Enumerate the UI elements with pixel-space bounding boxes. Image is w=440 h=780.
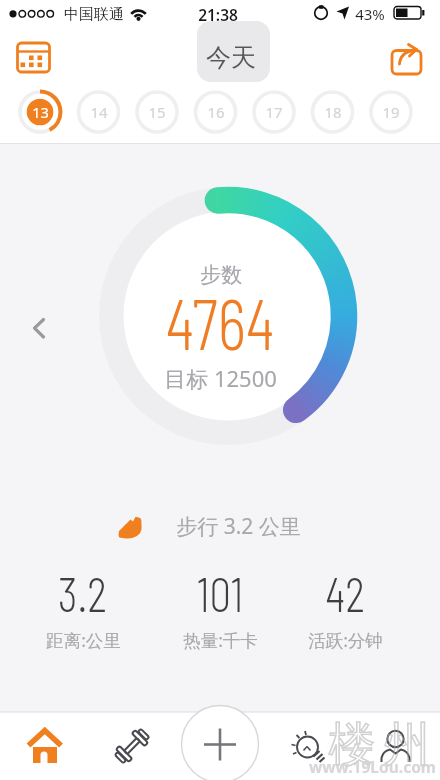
staticText: 14 — [90, 102, 108, 122]
button[interactable] — [312, 91, 354, 133]
button[interactable] — [195, 91, 237, 133]
staticText: 18 — [324, 102, 342, 122]
staticText: 今天 — [206, 42, 256, 73]
button[interactable] — [18, 306, 58, 350]
staticText: 19 — [382, 102, 400, 122]
staticText: 楼 — [329, 716, 375, 774]
staticText: 步数 — [200, 262, 242, 288]
button[interactable] — [181, 705, 259, 780]
staticText: 43% — [355, 4, 385, 24]
staticText: 距离:公里 — [46, 628, 121, 652]
staticText: 热量:千卡 — [183, 628, 258, 652]
staticText: 活跃:分钟 — [308, 628, 383, 652]
button[interactable] — [19, 91, 61, 133]
button[interactable] — [10, 36, 58, 80]
button[interactable] — [78, 91, 120, 133]
staticText: 步行 3.2 公里 — [176, 512, 301, 541]
staticText: 21:38 — [198, 4, 238, 25]
button[interactable] — [370, 91, 412, 133]
button[interactable] — [371, 720, 421, 770]
button[interactable] — [20, 720, 70, 770]
staticText: 4764 — [165, 280, 274, 360]
staticText: 16 — [207, 102, 225, 122]
staticText: 101 — [196, 563, 243, 622]
staticText: 42 — [325, 563, 365, 622]
button[interactable] — [136, 91, 178, 133]
staticText: 目标 12500 — [164, 363, 277, 393]
button[interactable] — [385, 42, 431, 82]
staticText: 中国联通 — [64, 5, 124, 24]
staticText: www.19Lou.com — [309, 756, 436, 777]
button[interactable] — [284, 720, 334, 770]
button[interactable] — [197, 21, 270, 82]
staticText: 州 — [384, 716, 430, 774]
staticText: 17 — [265, 102, 283, 122]
staticText: 15 — [148, 102, 166, 122]
button[interactable] — [253, 91, 295, 133]
staticText: 13 — [32, 102, 49, 122]
staticText: 3.2 — [58, 563, 107, 622]
button[interactable] — [108, 720, 158, 770]
